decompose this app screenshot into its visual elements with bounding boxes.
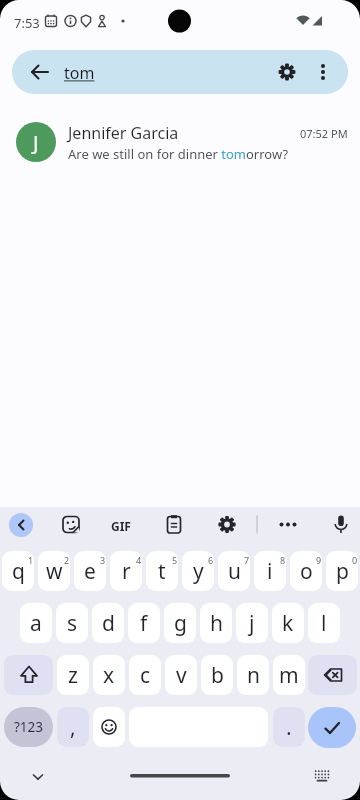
button[interactable]: .: [273, 707, 305, 747]
staticText: j: [249, 609, 255, 638]
button[interactable]: y: [182, 551, 214, 591]
button[interactable]: o: [290, 551, 322, 591]
staticText: q: [12, 557, 25, 586]
button[interactable]: [9, 513, 33, 537]
button[interactable]: c: [129, 655, 161, 695]
button[interactable]: m: [273, 655, 305, 695]
button[interactable]: r: [110, 551, 142, 591]
staticText: f: [140, 609, 148, 638]
staticText: g: [174, 609, 187, 638]
button[interactable]: j: [236, 603, 268, 643]
staticText: k: [282, 609, 294, 638]
staticText: t: [158, 557, 166, 586]
staticText: 7: [244, 554, 250, 566]
button[interactable]: J: [0, 112, 360, 172]
staticText: Jennifer Garcia: [68, 122, 179, 144]
staticText: e: [84, 557, 96, 586]
button[interactable]: u: [218, 551, 250, 591]
staticText: v: [176, 661, 187, 690]
staticText: z: [68, 661, 78, 690]
button[interactable]: x: [93, 655, 125, 695]
button[interactable]: a: [20, 603, 52, 643]
staticText: l: [321, 609, 327, 638]
staticText: m: [279, 661, 299, 690]
button[interactable]: [24, 765, 52, 789]
button[interactable]: n: [237, 655, 269, 695]
staticText: b: [211, 661, 224, 690]
button[interactable]: h: [200, 603, 232, 643]
staticText: n: [247, 661, 260, 690]
button[interactable]: i: [254, 551, 286, 591]
button[interactable]: z: [57, 655, 89, 695]
button[interactable]: b: [201, 655, 233, 695]
button[interactable]: v: [165, 655, 197, 695]
staticText: ?123: [14, 718, 44, 736]
button[interactable]: d: [92, 603, 124, 643]
staticText: 7:53: [14, 14, 40, 32]
button[interactable]: s: [56, 603, 88, 643]
button[interactable]: t: [146, 551, 178, 591]
staticText: tom: [64, 62, 95, 84]
staticText: 07:52 PM: [300, 126, 348, 141]
button[interactable]: l: [308, 603, 340, 643]
button[interactable]: p: [326, 551, 358, 591]
staticText: GIF: [111, 518, 131, 534]
staticText: ,: [70, 713, 76, 742]
staticText: r: [122, 557, 131, 586]
staticText: p: [336, 557, 349, 586]
staticText: .: [286, 713, 292, 742]
staticText: 9: [316, 554, 322, 566]
staticText: 0: [352, 554, 358, 566]
button[interactable]: [308, 655, 357, 695]
staticText: i: [267, 557, 273, 586]
staticText: 6: [208, 554, 214, 566]
staticText: a: [30, 609, 42, 638]
staticText: y: [193, 557, 204, 586]
staticText: 1: [28, 554, 34, 566]
button[interactable]: k: [272, 603, 304, 643]
staticText: c: [140, 661, 151, 690]
staticText: 8: [280, 554, 286, 566]
button[interactable]: q: [2, 551, 34, 591]
staticText: h: [210, 609, 223, 638]
button[interactable]: ?123: [4, 707, 53, 747]
button[interactable]: [93, 707, 125, 747]
button[interactable]: [308, 707, 356, 748]
staticText: 5: [172, 554, 178, 566]
button[interactable]: tom: [12, 50, 348, 94]
staticText: d: [102, 609, 115, 638]
staticText: 4: [136, 554, 142, 566]
staticText: Are we still on for dinner tomorrow?: [68, 145, 289, 163]
staticText: s: [67, 609, 78, 638]
button[interactable]: w: [38, 551, 70, 591]
button[interactable]: [4, 655, 53, 695]
staticText: w: [46, 557, 63, 586]
staticText: x: [103, 661, 115, 690]
staticText: 2: [64, 554, 70, 566]
staticText: u: [228, 557, 241, 586]
staticText: o: [300, 557, 313, 586]
staticText: 3: [100, 554, 106, 566]
button[interactable]: ,: [57, 707, 89, 747]
button[interactable]: g: [164, 603, 196, 643]
button[interactable]: f: [128, 603, 160, 643]
staticText: J: [33, 129, 39, 156]
button[interactable]: [308, 765, 336, 787]
button[interactable]: e: [74, 551, 106, 591]
